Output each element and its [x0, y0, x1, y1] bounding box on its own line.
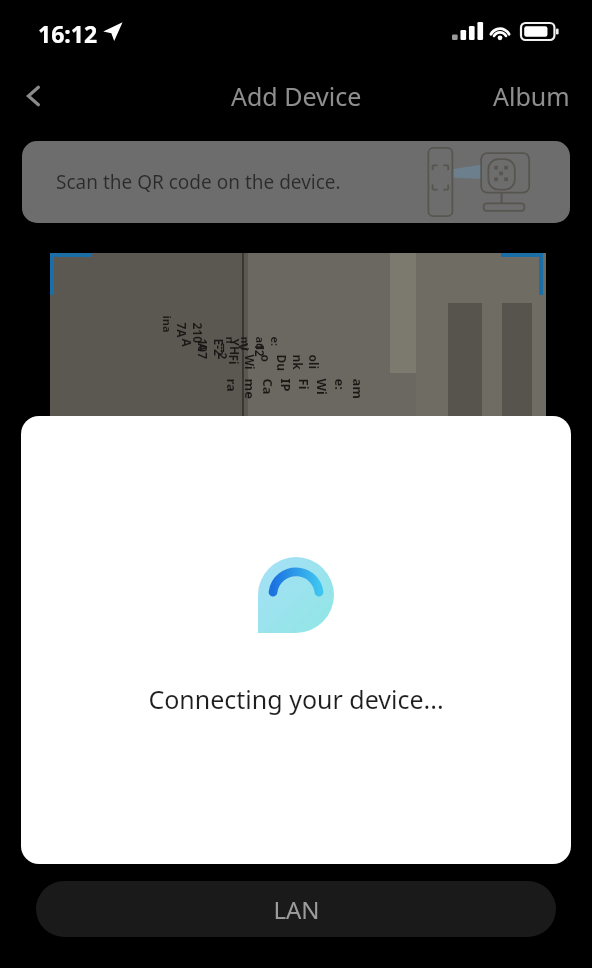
staticText: Scan the QR code on the device.	[56, 169, 341, 195]
button[interactable]: Scan the QR code on the device.	[22, 141, 570, 223]
staticText: ina	[159, 315, 174, 333]
staticText: e: admin	[222, 336, 282, 357]
staticText: 12V ⎓2A	[195, 343, 268, 364]
staticText: olink Duo WiFi	[225, 354, 321, 375]
staticText: Add Device	[231, 79, 362, 113]
button[interactable]: LAN	[36, 881, 556, 937]
staticText: 16:12	[38, 18, 98, 49]
button[interactable]: Back	[8, 70, 60, 122]
staticText: LAN	[273, 893, 320, 926]
button[interactable]: Album	[481, 69, 582, 123]
staticText: Album	[493, 79, 570, 113]
staticText: YHE-2107A	[178, 338, 242, 359]
staticText: ame: WiFi IP Camera	[222, 378, 366, 399]
staticText: 2107A	[173, 322, 205, 343]
staticText: Connecting your device...	[148, 682, 444, 716]
